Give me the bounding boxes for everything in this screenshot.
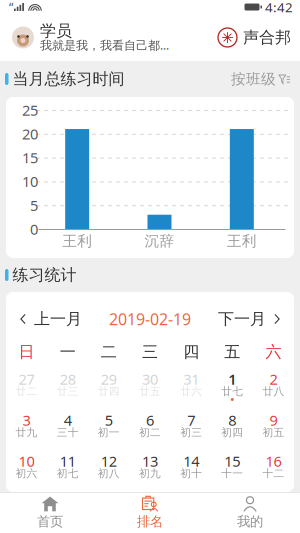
staticText: 3 xyxy=(23,410,31,430)
staticText: 29 xyxy=(101,369,117,389)
staticText: 廿七 xyxy=(221,385,243,398)
staticText: 15 xyxy=(22,148,38,167)
button[interactable]: 2 xyxy=(253,367,294,408)
staticText: 五 xyxy=(224,342,240,362)
button[interactable]: 14 xyxy=(171,449,212,490)
staticText: 4 xyxy=(64,410,72,430)
staticText: 8 xyxy=(228,410,236,430)
staticText: 初一 xyxy=(98,426,120,439)
button[interactable]: 9 xyxy=(253,408,294,449)
staticText: 1 xyxy=(228,369,236,389)
button[interactable]: 11 xyxy=(47,449,88,490)
staticText: 王利 xyxy=(227,232,257,250)
staticText: 日 xyxy=(19,342,35,362)
staticText: 王利 xyxy=(62,232,92,250)
staticText: 上一月 xyxy=(34,309,82,329)
button[interactable]: 12 xyxy=(88,449,129,490)
button[interactable]: 29 xyxy=(88,367,129,408)
button[interactable]: 下一月 xyxy=(210,301,294,337)
button[interactable]: 6 xyxy=(129,408,170,449)
button[interactable]: 5 xyxy=(88,408,129,449)
staticText: 声合邦 xyxy=(243,28,291,47)
staticText: 初十 xyxy=(180,467,202,480)
staticText: 二 xyxy=(101,342,117,362)
staticText: 廿三 xyxy=(57,385,79,398)
staticText: 首页 xyxy=(37,513,63,530)
staticText: 三 xyxy=(142,342,158,362)
staticText: 当月总练习时间 xyxy=(12,69,124,89)
button[interactable]: 4 xyxy=(47,408,88,449)
staticText: 初七 xyxy=(57,467,79,480)
staticText: 31 xyxy=(183,369,199,389)
button[interactable]: 上一月 xyxy=(6,301,90,337)
staticText: 三十 xyxy=(57,426,79,439)
staticText: 廿六 xyxy=(180,385,202,398)
staticText: 7 xyxy=(187,410,195,430)
staticText: 按班级 xyxy=(231,70,276,88)
staticText: 14 xyxy=(183,451,199,471)
staticText: 0 xyxy=(30,219,38,239)
staticText: 28 xyxy=(60,369,76,389)
button[interactable]: 排名 xyxy=(100,493,200,533)
staticText: 初九 xyxy=(139,467,161,480)
staticText: 12 xyxy=(101,451,117,471)
staticText: 学员 xyxy=(40,21,72,41)
staticText: 30 xyxy=(142,369,158,389)
staticText: 初三 xyxy=(180,426,202,439)
staticText: 11 xyxy=(60,451,76,471)
staticText: 10 xyxy=(22,172,38,191)
button[interactable]: 学员 xyxy=(0,14,169,61)
staticText: 5 xyxy=(30,195,38,215)
button[interactable]: 13 xyxy=(129,449,170,490)
button[interactable]: 15 xyxy=(212,449,253,490)
button[interactable]: 我的 xyxy=(200,493,300,533)
button[interactable]: 30 xyxy=(129,367,170,408)
staticText: 十一 xyxy=(221,467,243,480)
button[interactable]: 3 xyxy=(6,408,47,449)
staticText: 5 xyxy=(105,410,113,430)
button[interactable]: 首页 xyxy=(0,493,100,533)
button[interactable]: 7 xyxy=(171,408,212,449)
staticText: 下一月 xyxy=(218,309,266,329)
button[interactable]: 28 xyxy=(47,367,88,408)
staticText: 廿五 xyxy=(139,385,161,398)
button[interactable]: 31 xyxy=(171,367,212,408)
staticText: 2 xyxy=(269,369,277,389)
staticText: 初四 xyxy=(221,426,243,439)
staticText: 9 xyxy=(269,410,277,430)
staticText: 6 xyxy=(146,410,154,430)
staticText: 初八 xyxy=(98,467,120,480)
staticText: 十二 xyxy=(262,467,284,480)
staticText: 4:42 xyxy=(265,0,293,16)
staticText: 16 xyxy=(265,451,281,471)
staticText: 25 xyxy=(22,100,38,120)
button[interactable]: 10 xyxy=(6,449,47,490)
staticText: 沉辞 xyxy=(144,232,174,250)
button[interactable]: 声合邦 xyxy=(218,14,300,61)
staticText: 排名 xyxy=(137,513,163,530)
staticText: 廿二 xyxy=(16,385,38,398)
staticText: 初五 xyxy=(262,426,284,439)
staticText: “ xyxy=(9,0,13,15)
staticText: 四 xyxy=(183,342,199,362)
staticText: 初二 xyxy=(139,426,161,439)
staticText: 廿四 xyxy=(98,385,120,398)
staticText: 我的 xyxy=(237,513,263,530)
button[interactable]: 8 xyxy=(212,408,253,449)
staticText: 一 xyxy=(60,342,76,362)
staticText: 13 xyxy=(142,451,158,471)
staticText: 我就是我，我看自己都... xyxy=(40,37,169,53)
staticText: 15 xyxy=(224,451,240,471)
button[interactable]: 1 xyxy=(212,367,253,408)
staticText: 廿八 xyxy=(262,385,284,398)
staticText: 练习统计 xyxy=(12,265,76,285)
staticText: 10 xyxy=(19,451,35,471)
staticText: 2019-02-19 xyxy=(109,308,191,330)
button[interactable]: 16 xyxy=(253,449,294,490)
staticText: 27 xyxy=(19,369,35,389)
button[interactable]: 按班级 xyxy=(227,64,294,94)
staticText: 六 xyxy=(265,342,281,362)
staticText: 初六 xyxy=(16,467,38,480)
staticText: 廿九 xyxy=(16,426,38,439)
button[interactable]: 27 xyxy=(6,367,47,408)
